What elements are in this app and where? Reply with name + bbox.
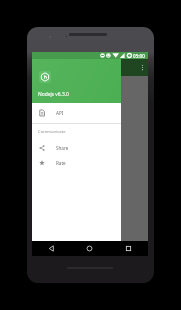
staticText: Share [56,145,69,151]
staticText: Rate [56,160,66,166]
button[interactable]: Home [70,241,109,256]
button[interactable]: Back [32,241,70,256]
staticText: API [56,110,64,116]
button[interactable]: Rate [32,155,121,170]
button[interactable]: More options [137,62,148,73]
staticText: Communicate [38,129,66,135]
staticText: 05:00 [133,53,145,59]
button[interactable]: Share [32,140,121,155]
button[interactable]: API [32,103,121,123]
button[interactable]: Recents [109,241,148,256]
staticText: Nodejs v6.3.0 [38,91,69,98]
